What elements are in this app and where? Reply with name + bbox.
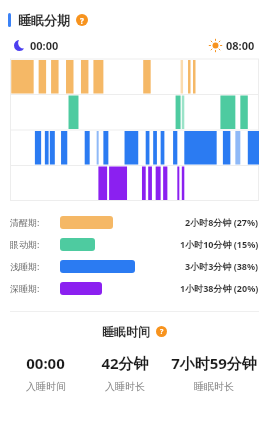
button[interactable]: 00:00	[6, 353, 85, 393]
staticText: 清醒期:	[10, 216, 40, 228]
staticText: 浅睡期:	[10, 260, 40, 272]
staticText: 入睡时间	[26, 380, 66, 393]
staticText: 入睡时长	[105, 380, 145, 393]
staticText: 2小时8分钟 (27%)	[185, 216, 259, 228]
staticText: 1小时38分钟 (20%)	[180, 282, 259, 294]
staticText: 00:00	[26, 353, 65, 373]
button[interactable]: 帮助	[76, 14, 88, 26]
staticText: 睡眠分期	[18, 12, 70, 28]
staticText: 3小时3分钟 (38%)	[185, 260, 259, 272]
button[interactable]: 7小时59分钟	[164, 353, 263, 393]
staticText: ?	[80, 15, 84, 26]
staticText: 7小时59分钟	[171, 353, 257, 373]
staticText: 42分钟	[101, 353, 149, 373]
button[interactable]: 清醒期:	[10, 211, 259, 233]
staticText: 眼动期:	[10, 238, 40, 250]
staticText: ?	[160, 327, 164, 337]
staticText: 1小时10分钟 (15%)	[180, 238, 259, 250]
staticText: 08:00	[226, 38, 255, 53]
button[interactable]: 眼动期:	[10, 233, 259, 255]
button[interactable]: 帮助	[156, 326, 167, 337]
staticText: 睡眠时长	[194, 380, 234, 393]
button[interactable]: 42分钟	[85, 353, 164, 393]
button[interactable]: 浅睡期:	[10, 255, 259, 277]
staticText: 睡眠时间	[102, 324, 150, 339]
staticText: 深睡期:	[10, 282, 40, 294]
staticText: 00:00	[30, 38, 59, 53]
button[interactable]: 深睡期:	[10, 277, 259, 299]
